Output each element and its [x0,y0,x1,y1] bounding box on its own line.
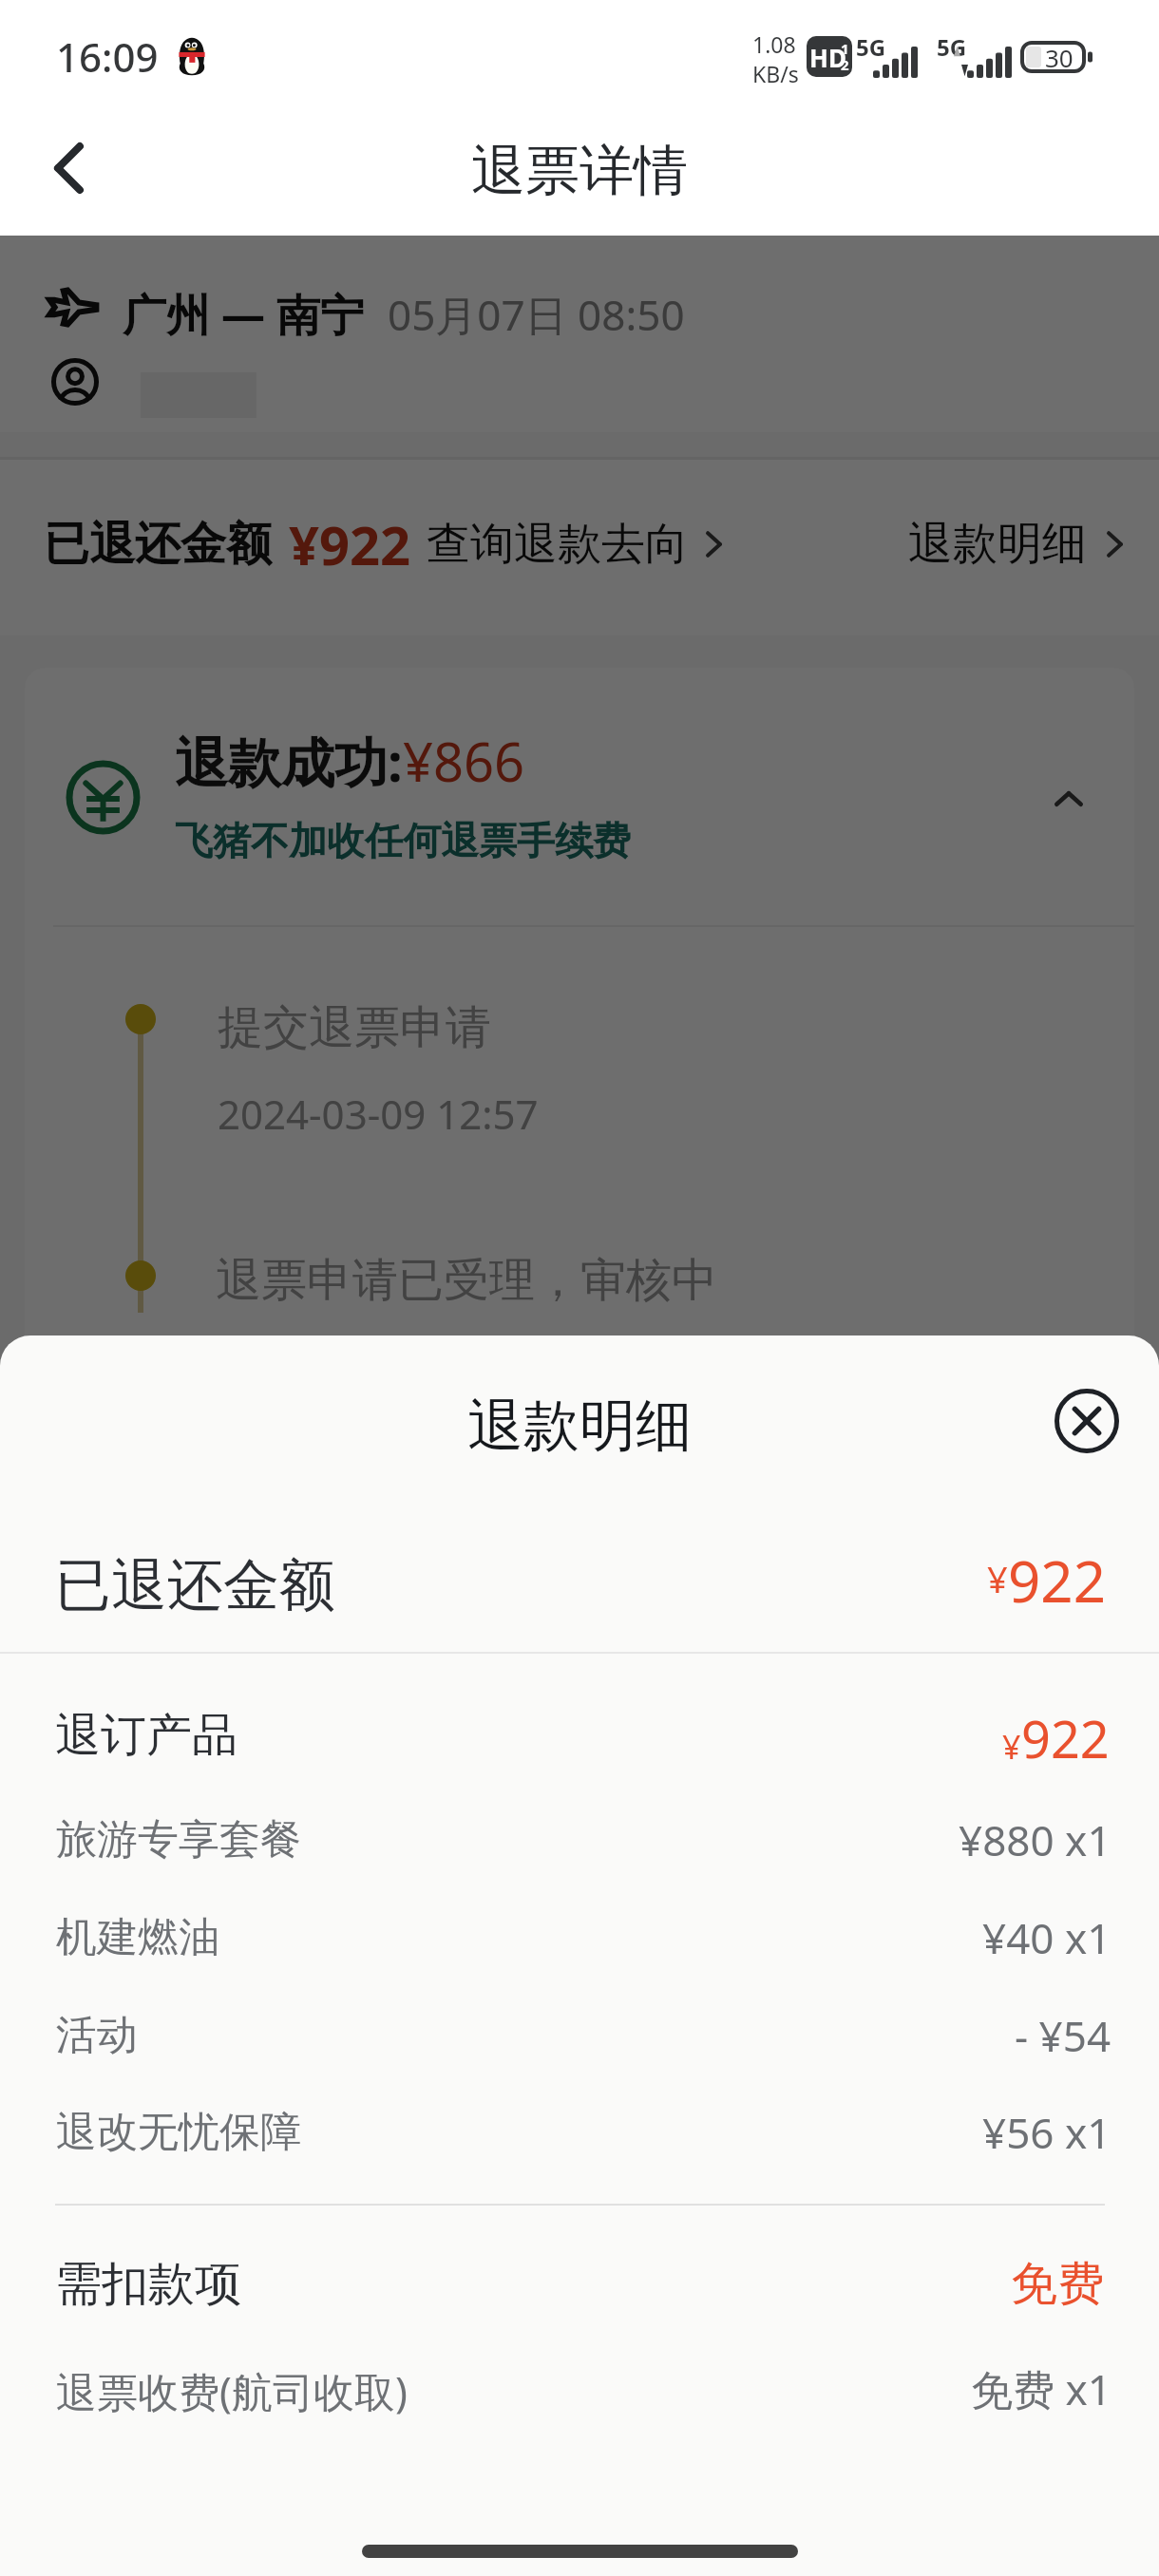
staticText: - ¥54 [1015,2007,1111,2064]
staticText: 活动 [56,2010,138,2061]
staticText: 5G [937,31,967,63]
staticText: 退票详情 [471,137,688,205]
staticText: 05月07日 08:50 [388,286,685,343]
staticText: 免费 x1 [971,2360,1111,2417]
button[interactable]: Close [1043,1377,1130,1465]
staticText: 已退还金额 [44,516,272,573]
staticText: 广州 — 南宁 [123,284,364,344]
staticText: ¥866 [403,725,525,797]
staticText: 922 [1021,1703,1110,1773]
button[interactable]: 退款明细 [908,516,1123,572]
staticText: 1 [841,39,849,58]
staticText: 机建燃油 [56,1912,219,1963]
staticText: 922 [1008,1542,1106,1619]
button[interactable]: Collapse [1026,763,1111,835]
staticText: 退款成功: [175,725,403,797]
button[interactable]: 查询退款去向 [427,517,722,572]
staticText: 飞猪不加收任何退票手续费 [175,817,631,864]
staticText: ¥40 x1 [982,1909,1111,1966]
staticText: HD [809,41,846,74]
staticText: 已退还金额 [55,1550,335,1620]
staticText: 5G [856,31,886,63]
staticText: ¥880 x1 [959,1811,1111,1868]
staticText: ¥56 x1 [982,2104,1111,2161]
staticText: 提交退票申请 [218,999,491,1056]
staticText: 1.08 [752,29,796,59]
staticText: 退票收费(航司收取) [56,2363,408,2419]
staticText: 16:09 [56,29,159,84]
staticText: 免费 [1011,2255,1104,2314]
staticText: 30 [1045,41,1073,73]
staticText: 查询退款去向 [427,517,689,572]
staticText: 需扣款项 [55,2255,241,2314]
staticText: KB/s [752,59,799,88]
button[interactable]: Back [0,110,138,236]
staticText: ¥922 [289,508,411,580]
staticText: 退款明细 [908,516,1087,572]
staticText: 2024-03-09 12:57 [218,1087,539,1141]
staticText: 退票申请已受理，审核中 [216,1252,717,1309]
staticText: 退订产品 [55,1707,237,1764]
staticText: ¥ [1002,1725,1021,1769]
staticText: 退款明细 [467,1391,692,1461]
staticText: ¥ [987,1554,1008,1603]
staticText: 旅游专享套餐 [56,1814,301,1866]
staticText: 2 [841,55,849,74]
staticText: 退改无忧保障 [56,2107,301,2158]
